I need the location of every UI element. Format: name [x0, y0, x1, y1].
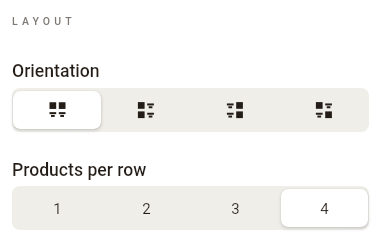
button[interactable]: Option 4	[281, 189, 368, 227]
staticText: Products per row	[12, 160, 147, 181]
staticText: LAYOUT	[12, 15, 76, 27]
staticText: 4	[320, 200, 329, 218]
button[interactable]: Option 2	[103, 189, 190, 227]
button[interactable]: Option 4	[281, 91, 368, 129]
button[interactable]: Option 3	[192, 91, 279, 129]
button[interactable]: Option 2	[103, 91, 190, 129]
staticText: Orientation	[12, 61, 100, 82]
staticText: 2	[142, 200, 151, 218]
button[interactable]: Option 1	[13, 189, 101, 227]
button[interactable]: Option 3	[192, 189, 279, 227]
staticText: 3	[231, 200, 240, 218]
button[interactable]: Option 1	[13, 91, 101, 129]
staticText: 1	[53, 200, 62, 218]
